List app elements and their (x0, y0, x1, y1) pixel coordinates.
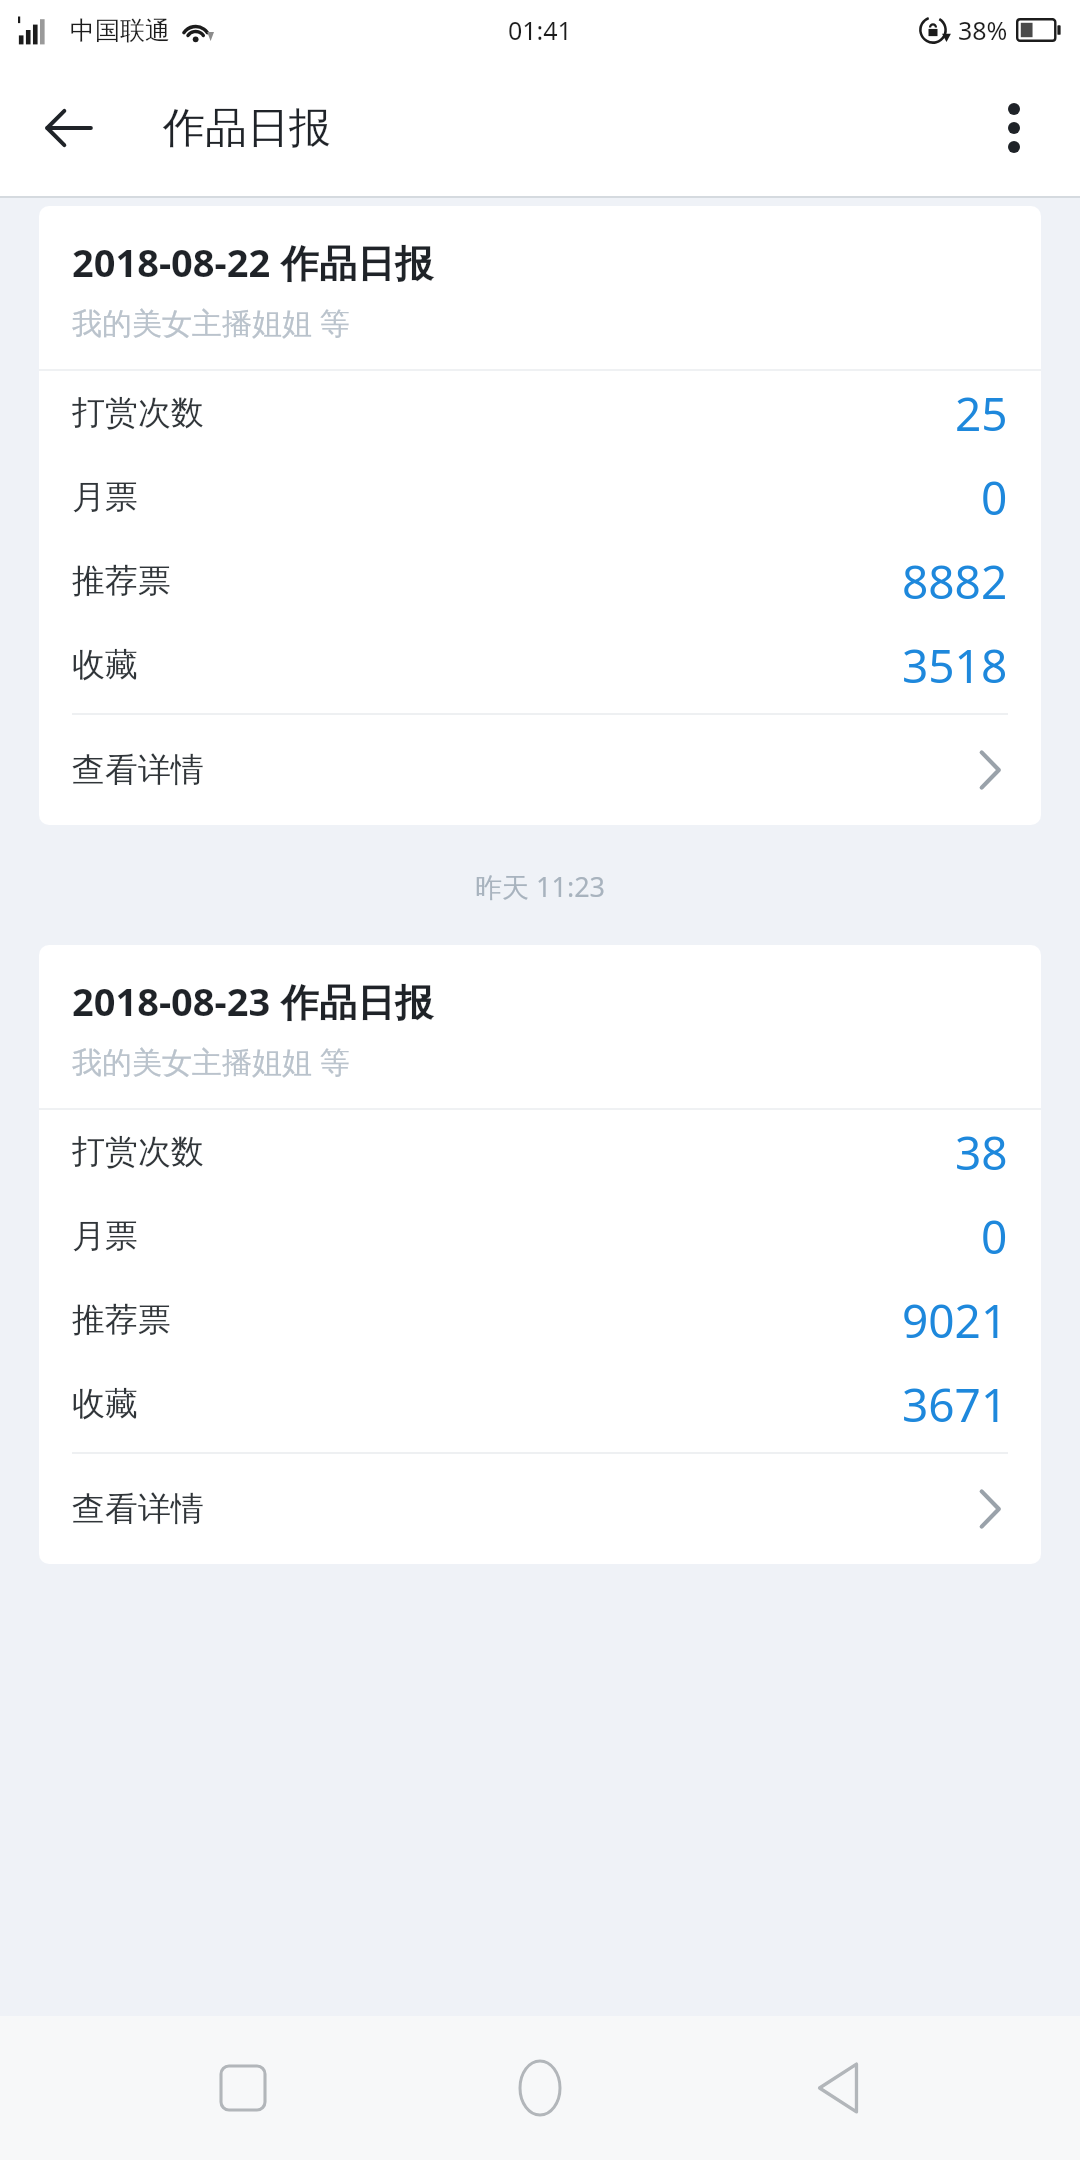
staticText: 月票 (72, 476, 138, 518)
staticText: 2018-08-23 (72, 975, 271, 1027)
staticText: 38 (955, 1121, 1008, 1184)
staticText: 8882 (902, 550, 1008, 613)
button[interactable]: 推荐票 (39, 1278, 1041, 1362)
staticText: 9021 (902, 1289, 1008, 1352)
staticText: 0 (981, 466, 1008, 529)
staticText: 我的美女主播姐姐 等 (72, 1041, 350, 1082)
staticText: 01:41 (508, 13, 572, 47)
staticText: 查看详情 (72, 1488, 204, 1530)
staticText: 收藏 (72, 644, 138, 686)
button[interactable]: 月票 (39, 1194, 1041, 1278)
button[interactable]: 月票 (39, 455, 1041, 539)
button[interactable]: Back (783, 2033, 893, 2143)
button[interactable]: 查看详情 (39, 1454, 1041, 1564)
staticText: 收藏 (72, 1383, 138, 1425)
button[interactable]: 收藏 (39, 1362, 1041, 1446)
button[interactable]: Recent apps (188, 2033, 298, 2143)
button[interactable]: Back (36, 96, 100, 160)
staticText: 查看详情 (72, 749, 204, 791)
staticText: 中国联通 (70, 15, 170, 46)
staticText: 昨天 11:23 (0, 868, 1080, 905)
staticText: 作品日报 (163, 102, 331, 155)
staticText: 月票 (72, 1215, 138, 1257)
staticText: 38% (958, 13, 1008, 47)
staticText: 25 (955, 382, 1008, 445)
staticText: 打赏次数 (72, 1131, 204, 1173)
staticText: 我的美女主播姐姐 等 (72, 302, 350, 343)
staticText: 作品日报 (281, 240, 433, 288)
button[interactable]: 推荐票 (39, 539, 1041, 623)
staticText: 推荐票 (72, 1299, 171, 1341)
staticText: 2018-08-22 (72, 236, 271, 288)
button[interactable]: 打赏次数 (39, 371, 1041, 455)
staticText: 0 (981, 1205, 1008, 1268)
staticText: 作品日报 (281, 979, 433, 1027)
staticText: 推荐票 (72, 560, 171, 602)
button[interactable]: Home (485, 2033, 595, 2143)
staticText: 打赏次数 (72, 392, 204, 434)
staticText: 3518 (902, 634, 1008, 697)
button[interactable]: 查看详情 (39, 715, 1041, 825)
button[interactable]: 收藏 (39, 623, 1041, 707)
button[interactable]: More options (978, 92, 1050, 164)
staticText: 3671 (902, 1373, 1008, 1436)
button[interactable]: 打赏次数 (39, 1110, 1041, 1194)
